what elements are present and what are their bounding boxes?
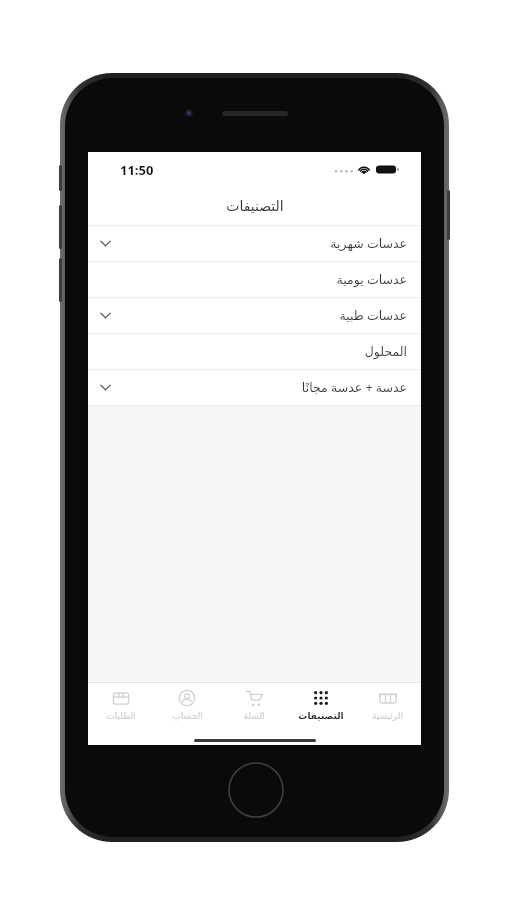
- button[interactable]: عدسة + عدسة مجانًا: [88, 370, 421, 405]
- button[interactable]: السلة: [220, 683, 287, 735]
- button[interactable]: الحساب: [154, 683, 220, 735]
- staticText: التصنيفات: [298, 711, 344, 721]
- button[interactable]: الرئيسية: [354, 683, 421, 735]
- staticText: 11:50: [120, 161, 154, 179]
- staticText: الرئيسية: [372, 711, 403, 721]
- staticText: الحساب: [172, 711, 203, 721]
- button[interactable]: الطلبات: [88, 683, 154, 735]
- other: Home: [228, 762, 284, 818]
- button[interactable]: التصنيفات: [287, 683, 354, 735]
- staticText: السلة: [243, 711, 265, 721]
- staticText: الطلبات: [106, 711, 136, 721]
- button[interactable]: عدسات شهرية: [88, 226, 421, 261]
- staticText: عدسات طبية: [339, 307, 407, 324]
- button[interactable]: المحلول: [88, 334, 421, 369]
- staticText: عدسات يومية: [336, 271, 407, 288]
- staticText: المحلول: [364, 344, 407, 359]
- button[interactable]: عدسات طبية: [88, 298, 421, 333]
- staticText: التصنيفات: [226, 198, 284, 214]
- staticText: عدسة + عدسة مجانًا: [301, 379, 407, 396]
- staticText: عدسات شهرية: [330, 235, 407, 252]
- button[interactable]: عدسات يومية: [88, 262, 421, 297]
